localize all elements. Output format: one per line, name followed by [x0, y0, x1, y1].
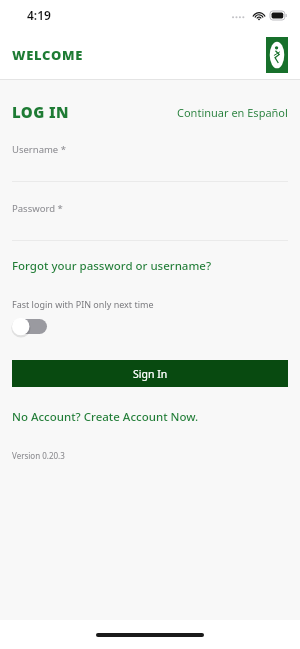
staticText: 4:19	[27, 7, 51, 23]
staticText: LOG IN	[12, 102, 69, 122]
staticText: Version 0.20.3	[12, 450, 65, 461]
button[interactable]: App logo	[266, 37, 288, 73]
staticText: WELCOME	[12, 46, 84, 64]
button[interactable]: Forgot your password or username?	[12, 258, 212, 274]
button[interactable]: Fast login with PIN toggle	[11, 317, 47, 336]
staticText: Password *	[12, 202, 63, 215]
staticText: Forgot your password or username?	[12, 258, 212, 274]
button[interactable]: Continuar en Español	[177, 105, 288, 120]
button[interactable]: Password *	[12, 202, 288, 241]
button[interactable]: No Account? Create Account Now.	[12, 409, 199, 425]
staticText: Fast login with PIN only next time	[12, 298, 154, 310]
staticText: Sign In	[133, 367, 168, 381]
other: App logo	[266, 37, 288, 73]
staticText: No Account? Create Account Now.	[12, 409, 199, 425]
button[interactable]: Sign In	[12, 360, 288, 387]
staticText: Username *	[12, 143, 66, 156]
button[interactable]: Username *	[12, 143, 288, 182]
staticText: Continuar en Español	[177, 105, 288, 120]
